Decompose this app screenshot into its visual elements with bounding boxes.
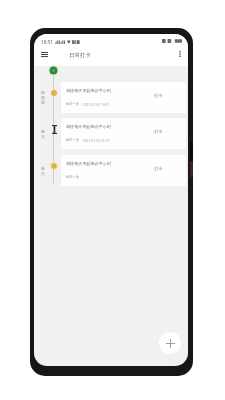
staticText: 每 bbox=[41, 129, 45, 134]
staticText: 坚持每天早起跑步半小时 bbox=[66, 124, 112, 129]
button[interactable]: More options bbox=[174, 48, 185, 60]
button[interactable]: 坚持每天早起跑步半小时 bbox=[61, 82, 186, 113]
button[interactable]: Menu bbox=[38, 48, 51, 60]
button[interactable]: 打卡 bbox=[153, 92, 164, 99]
staticText: 16:51 bbox=[41, 39, 53, 45]
staticText: 打卡 bbox=[154, 166, 163, 171]
button[interactable]: 打卡 bbox=[153, 165, 164, 172]
staticText: 日常打卡 bbox=[69, 52, 91, 59]
button[interactable]: 坚持每天早起跑步半小时 bbox=[61, 155, 186, 186]
staticText: 坚持每天早起跑步半小时 bbox=[66, 161, 112, 166]
staticText: 每天一次 bbox=[66, 138, 80, 142]
staticText: 坚持每天早起跑步半小时 bbox=[66, 88, 112, 93]
staticText: 星 bbox=[41, 95, 45, 100]
button[interactable]: Add bbox=[159, 332, 181, 354]
staticText: 每 bbox=[41, 166, 45, 171]
staticText: 天 bbox=[41, 134, 45, 139]
staticText: 每天一次 bbox=[66, 175, 80, 179]
button[interactable]: 打卡 bbox=[153, 128, 164, 135]
staticText: · 2021-01-05 16:51 bbox=[81, 102, 110, 106]
staticText: · 2021-01-04 21:13 bbox=[81, 138, 110, 142]
staticText: 每天一次 bbox=[66, 102, 80, 106]
staticText: 打卡 bbox=[154, 93, 163, 98]
staticText: 每 bbox=[41, 90, 45, 95]
button[interactable]: 坚持每天早起跑步半小时 bbox=[61, 118, 186, 149]
staticText: 打卡 bbox=[154, 129, 163, 134]
staticText: 天 bbox=[41, 171, 45, 176]
staticText: 期 bbox=[41, 100, 45, 105]
